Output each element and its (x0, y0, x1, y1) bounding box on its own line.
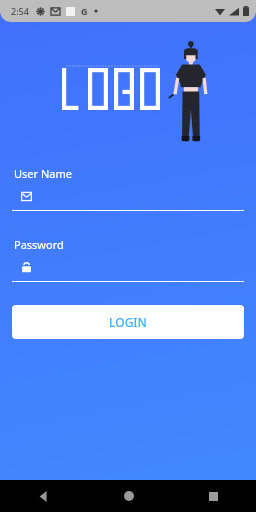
staticText: G (81, 5, 88, 17)
button[interactable]: Home (86, 480, 171, 512)
button[interactable]: Back (0, 480, 86, 512)
button[interactable]: Recent apps (171, 480, 256, 512)
staticText: Password (14, 237, 64, 252)
staticText: 2:54 (11, 5, 29, 17)
button[interactable]: LOGIN (12, 305, 244, 339)
button[interactable]: User Name (0, 166, 256, 211)
other: Password (21, 262, 32, 273)
button[interactable]: Password (0, 237, 256, 282)
staticText: LOGIN (109, 314, 147, 330)
other: Email (21, 191, 32, 202)
staticText: User Name (14, 166, 72, 181)
